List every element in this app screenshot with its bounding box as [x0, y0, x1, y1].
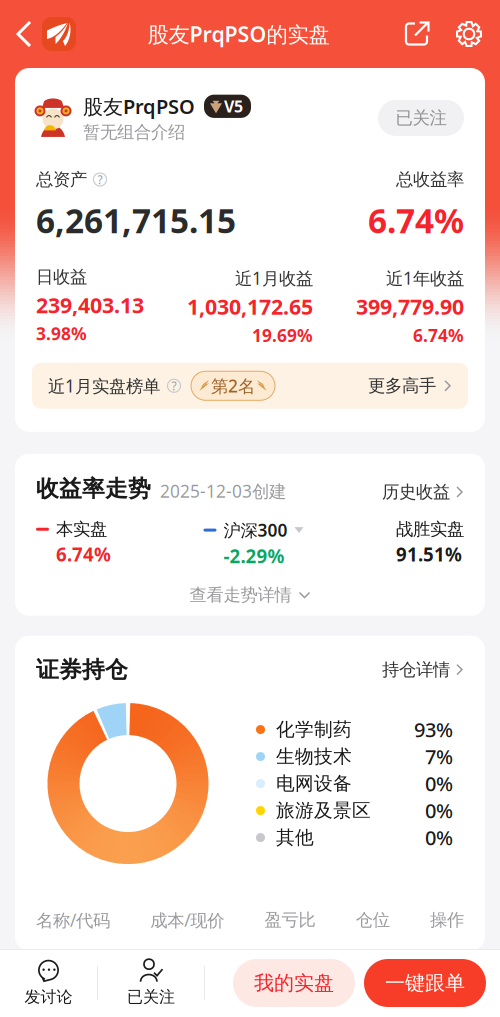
staticText: 第2名: [211, 374, 255, 397]
staticText: 股友PrqPSO: [83, 93, 195, 120]
button[interactable]: 已关注: [98, 949, 204, 1017]
staticText: 持仓详情: [382, 659, 450, 680]
staticText: 0%: [425, 797, 453, 824]
staticText: 6.74%: [368, 198, 464, 242]
staticText: 3.98%: [36, 322, 87, 345]
button[interactable]: Share: [397, 9, 431, 58]
staticText: 暂无组合介绍: [83, 122, 185, 143]
staticText: 日收益: [36, 266, 87, 288]
staticText: 本实盘: [56, 519, 107, 540]
staticText: 总收益率: [396, 169, 464, 190]
staticText: 已关注: [127, 987, 175, 1007]
button[interactable]: Back: [0, 7, 80, 61]
staticText: 总资产: [36, 169, 87, 190]
staticText: 6,261,715.15: [36, 198, 236, 242]
staticText: 6.74%: [413, 324, 464, 347]
staticText: 战胜实盘: [396, 519, 464, 540]
button[interactable]: 一键跟单: [364, 959, 486, 1007]
staticText: 成本/现价: [150, 909, 224, 932]
button[interactable]: 已关注: [378, 100, 464, 136]
button[interactable]: 近1月实盘榜单: [32, 363, 468, 409]
button[interactable]: 查看走势详情: [15, 568, 485, 616]
staticText: 更多高手: [368, 375, 436, 396]
staticText: 股友PrqPSO的实盘: [147, 20, 329, 48]
button[interactable]: 持仓详情: [382, 659, 464, 680]
staticText: 93%: [414, 716, 453, 743]
staticText: 近1年收益: [386, 266, 464, 289]
staticText: ?: [171, 378, 176, 394]
button[interactable]: 历史收益: [382, 481, 464, 503]
staticText: 6.74%: [56, 542, 111, 567]
staticText: 一键跟单: [385, 971, 465, 995]
staticText: 近1月收益: [235, 266, 313, 289]
staticText: 电网设备: [276, 772, 352, 795]
staticText: 证券持仓: [36, 656, 128, 683]
staticText: 旅游及景区: [276, 799, 371, 822]
staticText: 7%: [425, 743, 453, 770]
staticText: ?: [97, 171, 102, 187]
staticText: 399,779.90: [356, 292, 464, 321]
staticText: 2025-12-03创建: [160, 480, 286, 503]
staticText: 生物技术: [276, 745, 352, 768]
staticText: 0%: [425, 824, 453, 851]
button[interactable]: Settings: [431, 9, 500, 58]
staticText: 1,030,172.65: [187, 292, 313, 321]
staticText: 近1月实盘榜单: [48, 374, 160, 397]
button[interactable]: 我的实盘: [233, 959, 355, 1007]
staticText: 仓位: [356, 909, 390, 931]
staticText: 239,403.13: [36, 291, 144, 319]
staticText: 发讨论: [24, 987, 72, 1007]
staticText: 盈亏比: [264, 909, 315, 931]
staticText: 19.69%: [252, 324, 313, 347]
staticText: 操作: [430, 909, 464, 931]
staticText: 0%: [425, 770, 453, 797]
staticText: 已关注: [395, 107, 446, 129]
staticText: V5: [224, 96, 243, 117]
staticText: 沪深300: [223, 519, 287, 542]
staticText: -2.29%: [223, 544, 284, 568]
staticText: 查看走势详情: [189, 584, 291, 606]
staticText: 化学制药: [276, 718, 352, 741]
staticText: 我的实盘: [254, 971, 334, 995]
staticText: 收益率走势: [36, 475, 151, 503]
button[interactable]: 发讨论: [0, 949, 97, 1017]
staticText: 名称/代码: [36, 909, 110, 932]
staticText: 91.51%: [396, 542, 462, 567]
staticText: 其他: [276, 826, 314, 849]
staticText: 历史收益: [382, 481, 450, 503]
